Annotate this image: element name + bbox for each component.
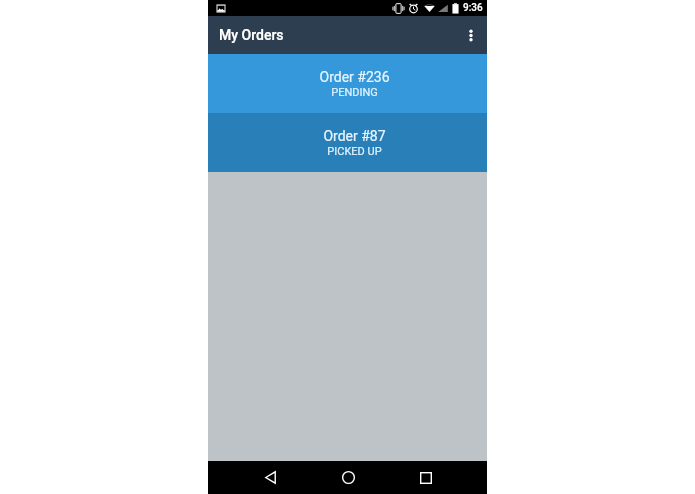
staticText: PICKED UP	[327, 145, 382, 158]
staticText: Order #236	[319, 69, 390, 85]
button[interactable]: Order #87	[208, 113, 487, 172]
staticText: PENDING	[331, 86, 378, 99]
button[interactable]: Recent apps	[402, 461, 450, 494]
button[interactable]: More options	[452, 16, 490, 54]
staticText: Order #87	[323, 128, 386, 144]
button[interactable]: Home	[324, 461, 372, 494]
staticText: My Orders	[219, 27, 284, 43]
button[interactable]: Back	[246, 461, 294, 494]
button[interactable]: Order #236	[208, 54, 487, 113]
staticText: 9:36	[463, 2, 483, 14]
